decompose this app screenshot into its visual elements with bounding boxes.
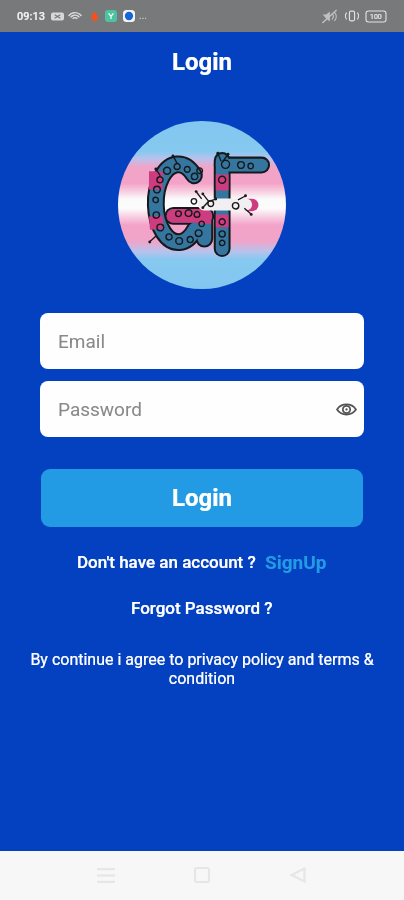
button[interactable]: SignUp	[265, 551, 327, 573]
button[interactable]: Password	[40, 381, 364, 437]
staticText: 09:13	[17, 10, 45, 23]
button[interactable]: Forgot Password ?	[131, 598, 273, 618]
staticText: Email	[58, 330, 106, 352]
staticText: 100	[370, 13, 382, 21]
staticText: Password	[58, 398, 142, 420]
staticText: Login	[172, 48, 233, 76]
staticText: SignUp	[265, 551, 327, 573]
staticText: ...	[139, 10, 147, 22]
staticText: Login	[172, 484, 233, 512]
staticText: Forgot Password ?	[131, 598, 273, 618]
button[interactable]: Login	[41, 469, 363, 527]
staticText: By continue i agree to privacy policy an…	[30, 650, 374, 688]
button[interactable]: Home	[178, 851, 226, 899]
button[interactable]: Back	[274, 851, 322, 899]
staticText: Don't have an account ?	[77, 552, 265, 572]
button[interactable]: Recent apps	[82, 851, 130, 899]
button[interactable]: Email	[40, 313, 364, 369]
